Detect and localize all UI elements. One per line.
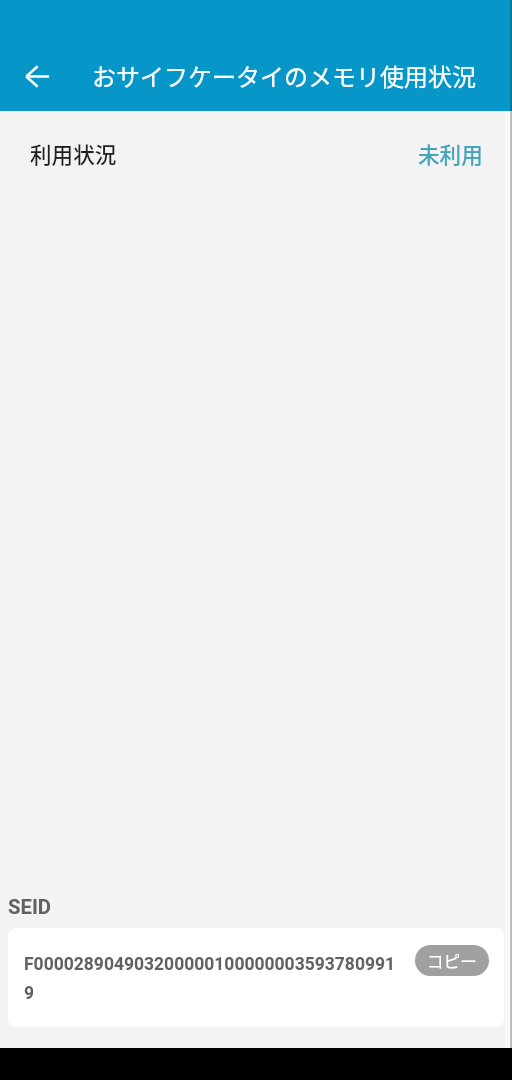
button[interactable]: Back [13, 52, 61, 100]
button[interactable]: 利用状況 [0, 111, 512, 199]
staticText: おサイフケータイのメモリ使用状況 [92, 58, 476, 93]
staticText: SEID [8, 895, 52, 919]
button[interactable]: コピー [415, 945, 489, 976]
staticText: F000028904903200000100000003593780991 9 [24, 954, 396, 1003]
staticText: 利用状況 [30, 138, 117, 169]
staticText: コピー [427, 949, 477, 973]
staticText: 未利用 [418, 138, 483, 169]
